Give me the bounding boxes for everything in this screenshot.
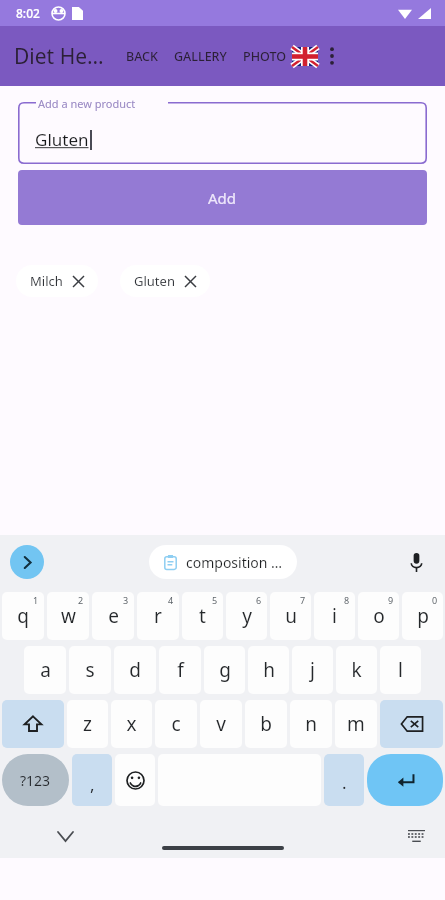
button[interactable]: Expand suggestions	[10, 545, 44, 579]
button[interactable]: p	[402, 592, 443, 640]
staticText: Add a new product	[38, 96, 136, 111]
staticText: r	[154, 603, 162, 629]
button[interactable]: Enter	[367, 754, 443, 806]
staticText: BACK	[126, 48, 158, 65]
staticText: u	[285, 603, 297, 629]
button[interactable]: Milch	[16, 265, 98, 297]
button[interactable]: e	[92, 592, 134, 640]
staticText: x	[126, 711, 137, 737]
staticText: o	[373, 603, 385, 629]
staticText: ?123	[20, 771, 51, 790]
staticText: 8:02	[16, 5, 40, 21]
staticText: 5	[212, 594, 218, 606]
button[interactable]: Shift	[2, 700, 64, 748]
staticText: e	[108, 603, 119, 629]
staticText: n	[305, 711, 317, 737]
staticText: GALLERY	[174, 48, 227, 65]
staticText: Gluten	[134, 272, 175, 290]
staticText: z	[83, 711, 92, 737]
button[interactable]: h	[248, 646, 289, 694]
button[interactable]: Add	[18, 170, 427, 225]
button[interactable]: a	[24, 646, 66, 694]
staticText: 3	[123, 594, 129, 606]
button[interactable]: y	[226, 592, 267, 640]
staticText: composition …	[186, 553, 283, 572]
button[interactable]: Gluten	[120, 265, 210, 297]
button[interactable]: j	[292, 646, 333, 694]
button[interactable]: k	[336, 646, 377, 694]
button[interactable]: c	[155, 700, 197, 748]
button[interactable]: m	[335, 700, 377, 748]
button[interactable]: ?123	[2, 754, 69, 806]
button[interactable]: Language	[292, 47, 318, 66]
button[interactable]: v	[200, 700, 242, 748]
staticText: 8	[344, 594, 350, 606]
staticText: b	[260, 711, 272, 737]
button[interactable]: l	[380, 646, 421, 694]
button[interactable]: BACK	[126, 40, 158, 73]
button[interactable]: Change keyboard	[403, 823, 429, 849]
button[interactable]: GALLERY	[174, 40, 227, 73]
button[interactable]: Diet He…	[14, 42, 104, 71]
staticText: 1	[33, 594, 39, 606]
staticText: 9	[388, 594, 394, 606]
button[interactable]: s	[69, 646, 111, 694]
staticText: c	[171, 711, 181, 737]
button[interactable]: Emoji	[115, 754, 155, 806]
staticText: Add	[208, 188, 237, 208]
staticText: a	[40, 657, 51, 683]
staticText: p	[417, 603, 429, 629]
staticText: w	[61, 603, 76, 629]
staticText: 6	[256, 594, 262, 606]
button[interactable]: d	[114, 646, 156, 694]
button[interactable]: n	[290, 700, 332, 748]
staticText: y	[242, 603, 252, 629]
button[interactable]: q	[2, 592, 44, 640]
button[interactable]: i	[314, 592, 355, 640]
staticText: q	[17, 603, 29, 629]
button[interactable]: More options	[318, 34, 346, 78]
staticText: v	[216, 711, 226, 737]
staticText: s	[85, 657, 95, 683]
staticText: j	[310, 657, 315, 683]
button[interactable]: r	[137, 592, 179, 640]
button[interactable]: .	[324, 754, 364, 806]
button[interactable]: o	[358, 592, 399, 640]
button[interactable]: composition …	[149, 545, 297, 579]
staticText: m	[347, 711, 365, 737]
button[interactable]: g	[204, 646, 245, 694]
staticText: 0	[432, 594, 438, 606]
button[interactable]: t	[182, 592, 223, 640]
staticText: f	[177, 657, 184, 683]
button[interactable]: x	[111, 700, 152, 748]
staticText: t	[199, 603, 206, 629]
staticText: l	[398, 657, 403, 683]
button[interactable]: u	[270, 592, 311, 640]
staticText: k	[351, 657, 362, 683]
staticText: .	[342, 771, 347, 794]
staticText: d	[129, 657, 141, 683]
button[interactable]: PHOTO	[243, 40, 286, 73]
staticText: Milch	[30, 272, 63, 290]
button[interactable]: ,	[72, 754, 112, 806]
button[interactable]: Backspace	[380, 700, 443, 748]
staticText: g	[219, 657, 231, 683]
staticText: ,	[90, 773, 95, 796]
staticText: 4	[168, 594, 174, 606]
button[interactable]: w	[47, 592, 89, 640]
button[interactable]: z	[67, 700, 108, 748]
staticText: Gluten	[35, 128, 89, 151]
button[interactable]: f	[159, 646, 201, 694]
staticText: PHOTO	[243, 48, 286, 65]
staticText: h	[263, 657, 275, 683]
button[interactable]: Hide keyboard	[50, 821, 80, 851]
staticText: i	[332, 603, 337, 629]
staticText: 2	[78, 594, 84, 606]
button[interactable]: b	[245, 700, 287, 748]
button[interactable]: Voice input	[401, 547, 431, 577]
staticText: 7	[300, 594, 306, 606]
